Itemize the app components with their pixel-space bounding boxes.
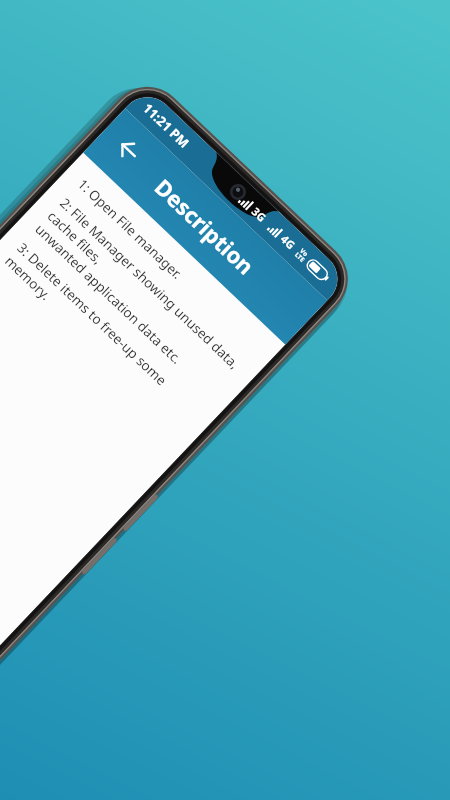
button[interactable]: Description app screen preview xyxy=(0,0,450,800)
